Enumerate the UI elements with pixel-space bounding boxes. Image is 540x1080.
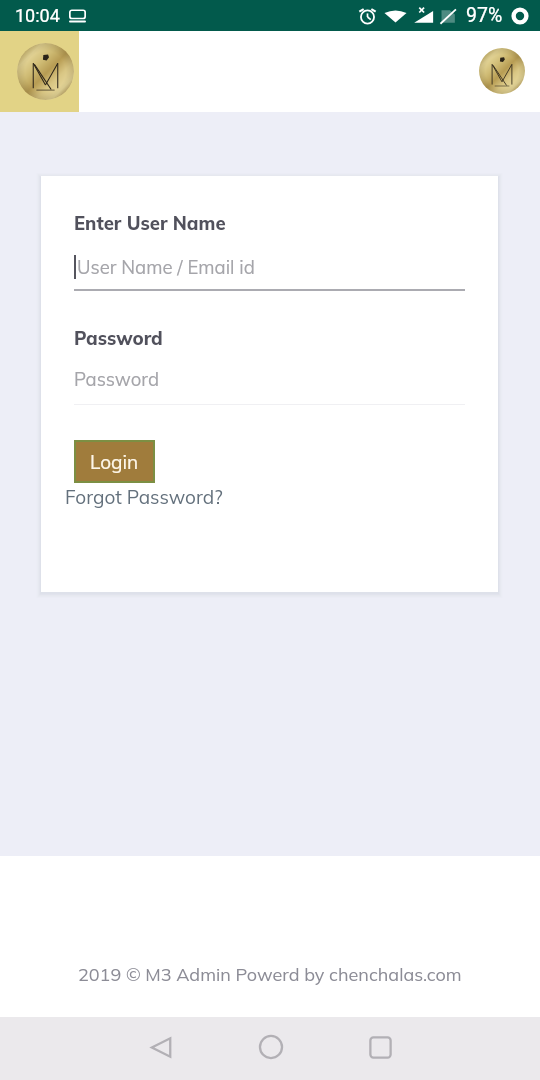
staticText: Password <box>74 367 160 390</box>
staticText: 10:04 <box>15 5 60 26</box>
staticText: 2019 © M3 Admin Powerd by chenchalas.com <box>78 963 462 986</box>
staticText: User Name / Email id <box>77 255 255 278</box>
staticText: Forgot Password? <box>65 485 223 509</box>
staticText: Login <box>90 450 139 474</box>
button[interactable]: Login <box>76 442 153 481</box>
button[interactable]: Recent apps <box>350 1017 410 1077</box>
button[interactable]: Forgot Password? <box>65 485 223 509</box>
staticText: Enter User Name <box>74 211 226 234</box>
button[interactable]: M3 Admin logo <box>479 48 525 94</box>
staticText: Password <box>74 326 163 349</box>
button[interactable]: M3 Admin logo <box>17 43 74 100</box>
button[interactable]: Home <box>241 1017 301 1077</box>
staticText: 97% <box>466 4 503 27</box>
button[interactable]: Back <box>131 1017 191 1077</box>
